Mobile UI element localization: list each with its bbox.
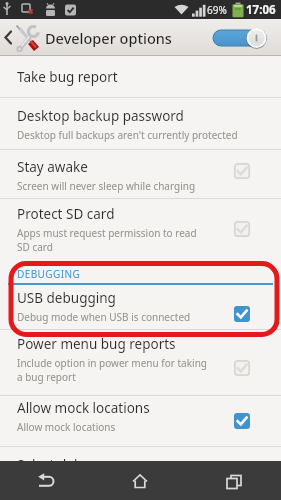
staticText: Take bug report [17,68,118,86]
button[interactable]: Allow mock locations [0,396,281,446]
staticText: 17:06 [246,2,276,18]
button[interactable]: Stay awake [0,150,281,198]
staticText: Allow mock locations [17,399,150,417]
staticText: 69% [207,3,227,17]
button[interactable] [213,26,269,50]
staticText: a bug report [17,370,76,384]
staticText: SD card [17,240,53,254]
staticText: DEBUGGING [17,267,81,281]
staticText: Include option in power menu for taking [17,356,207,370]
button[interactable]: Desktop backup password [0,98,281,149]
button[interactable]: USB debugging [0,286,281,329]
button[interactable]: Take bug report [0,56,281,97]
button[interactable]: Select debug app [0,447,281,461]
staticText: Select debug app [17,456,127,461]
staticText: Screen will never sleep while charging [17,179,196,193]
staticText: Allow mock locations [17,420,116,434]
staticText: USB debugging [17,289,116,307]
button[interactable] [93,461,187,500]
staticText: Stay awake [17,158,88,176]
button[interactable] [187,461,281,500]
button[interactable] [0,461,93,500]
staticText: Apps must request permission to read [17,226,197,240]
button[interactable]: Developer options [0,19,281,56]
button[interactable]: Protect SD card [0,199,281,258]
staticText: Desktop backup password [17,107,184,125]
staticText: Power menu bug reports [17,335,176,353]
staticText: Debug mode when USB is connected [17,310,191,324]
staticText: Protect SD card [17,205,115,223]
staticText: Desktop full backups aren't currently pr… [17,128,238,142]
button[interactable]: Power menu bug reports [0,330,281,395]
staticText: Developer options [45,28,172,48]
